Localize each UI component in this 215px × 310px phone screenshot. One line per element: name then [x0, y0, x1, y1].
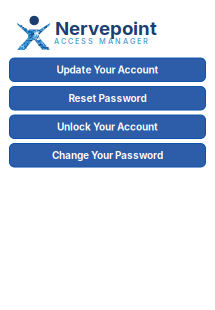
button[interactable]: Change Your Password	[9, 143, 205, 167]
staticText: Update Your Account	[56, 64, 158, 76]
staticText: Unlock Your Account	[57, 121, 158, 133]
staticText: A C C E S S M A N A G E R	[54, 37, 148, 46]
button[interactable]: Reset Password	[9, 86, 205, 110]
button[interactable]: Update Your Account	[9, 58, 205, 81]
staticText: Nervepoint	[55, 17, 157, 40]
button[interactable]: Unlock Your Account	[9, 115, 205, 138]
staticText: Reset Password	[68, 92, 146, 104]
staticText: Change Your Password	[52, 149, 163, 161]
